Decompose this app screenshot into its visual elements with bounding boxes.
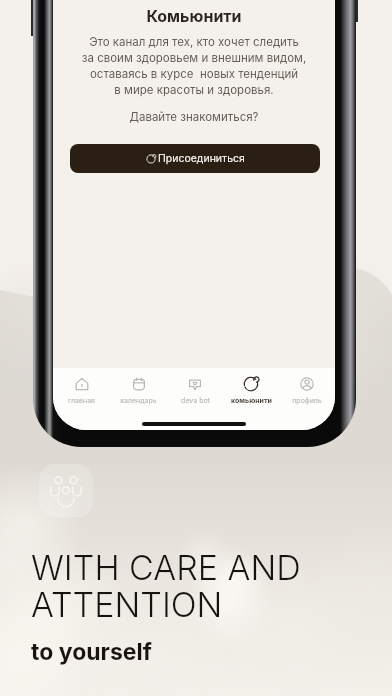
staticText: профиль xyxy=(292,396,322,404)
staticText: календарь xyxy=(120,396,157,404)
button[interactable]: Community xyxy=(39,464,93,517)
staticText: комьюнити xyxy=(231,396,272,404)
staticText: deva bot xyxy=(181,396,210,404)
staticText: Это канал для тех, кто хочет следить за … xyxy=(53,35,335,97)
button[interactable]: deva bot xyxy=(167,376,223,404)
staticText: to yourself xyxy=(31,638,152,666)
button[interactable]: главная xyxy=(53,376,110,404)
staticText: Давайте знакомиться? xyxy=(53,110,335,124)
button[interactable]: комьюнити xyxy=(223,376,279,404)
staticText: Присоединиться xyxy=(158,152,245,165)
staticText: Комьюнити xyxy=(53,6,335,25)
staticText: главная xyxy=(68,396,95,404)
button[interactable]: календарь xyxy=(110,376,167,404)
button[interactable]: профиль xyxy=(279,376,335,404)
staticText: WITH CARE AND ATTENTION xyxy=(31,547,301,625)
button[interactable]: Присоединиться xyxy=(70,144,320,173)
